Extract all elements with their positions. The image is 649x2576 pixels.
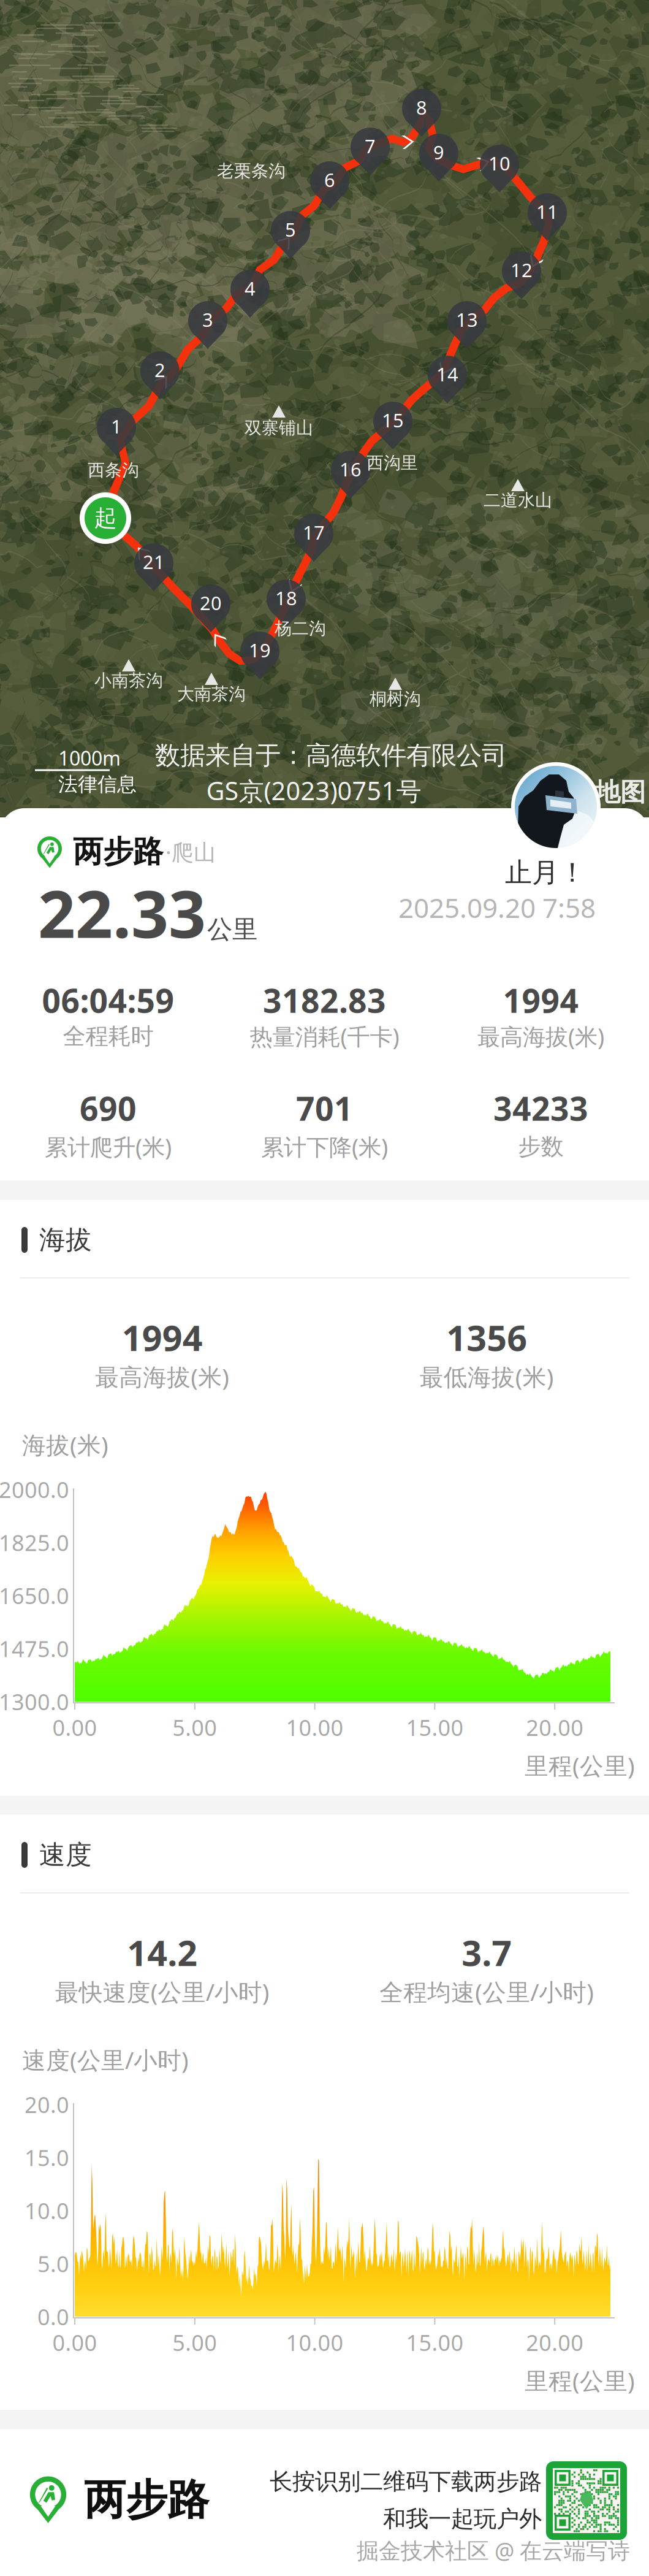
staticText: 两步路 [84, 2474, 209, 2526]
staticText: 06:04:59 [42, 978, 174, 1022]
staticText: 里程(公里) [525, 2365, 635, 2396]
staticText: 海拔 [39, 1224, 92, 1256]
staticText: 地图 [595, 777, 645, 808]
staticText: 21 [143, 549, 165, 574]
staticText: 里程(公里) [525, 1750, 635, 1781]
staticText: 5.00 [172, 1713, 217, 1742]
staticText: 0.00 [52, 1713, 97, 1742]
staticText: 1825.0 [0, 1528, 69, 1557]
staticText: 海拔(米) [22, 1429, 108, 1460]
staticText: 13 [456, 307, 478, 332]
staticText: 16 [340, 457, 362, 482]
staticText: 6 [324, 167, 335, 192]
staticText: 34233 [493, 1086, 588, 1130]
staticText: 2025.09.20 7:58 [398, 890, 596, 925]
staticText: 掘金技术社区 @ 在云端写诗 [357, 2536, 630, 2565]
staticText: 1994 [503, 978, 579, 1022]
staticText: 9 [433, 140, 444, 165]
staticText: 12 [510, 257, 533, 282]
staticText: GS京(2023)0751号 [206, 773, 421, 807]
staticText: 2 [154, 357, 165, 382]
staticText: 最高海拔(米) [95, 1361, 229, 1392]
staticText: 0.0 [37, 2302, 69, 2331]
staticText: 15.00 [406, 1713, 464, 1742]
staticText: 热量消耗(千卡) [250, 1021, 399, 1051]
staticText: 速度 [39, 1839, 92, 1871]
staticText: 7 [365, 133, 376, 158]
staticText: 19 [249, 637, 271, 662]
staticText: 22.33 [38, 869, 206, 956]
staticText: 最快速度(公里/小时) [55, 1976, 270, 2007]
staticText: 5.00 [172, 2328, 217, 2357]
button[interactable]: 两步路 [34, 835, 303, 869]
staticText: 20.00 [526, 1713, 584, 1742]
staticText: 5 [285, 217, 296, 242]
staticText: 3 [202, 307, 213, 332]
staticText: 小南茶沟 [94, 670, 163, 691]
staticText: 1475.0 [0, 1634, 69, 1663]
staticText: 两步路 [73, 833, 163, 870]
staticText: 西条沟 [88, 460, 139, 481]
staticText: 10.00 [286, 1713, 344, 1742]
staticText: 17 [303, 520, 325, 545]
staticText: 长按识别二维码下载两步路 [270, 2468, 542, 2496]
staticText: 1300.0 [0, 1687, 69, 1716]
staticText: 1 [111, 414, 122, 439]
staticText: 1356 [446, 1314, 527, 1361]
staticText: 西沟里 [366, 452, 418, 474]
staticText: 双寨铺山 [245, 417, 313, 439]
staticText: 1000m [58, 745, 121, 771]
button[interactable]: 两步路 [25, 2474, 227, 2526]
staticText: 701 [296, 1086, 353, 1130]
staticText: 止月！ [505, 856, 586, 889]
staticText: 20.00 [526, 2328, 584, 2357]
staticText: 全程耗时 [63, 1022, 154, 1050]
staticText: 最高海拔(米) [477, 1021, 604, 1051]
staticText: 3182.83 [263, 978, 386, 1022]
staticText: 大南茶沟 [177, 684, 246, 705]
staticText: 15.00 [406, 2328, 464, 2357]
staticText: 法律信息 [58, 772, 137, 796]
staticText: 和我一起玩户外 [383, 2505, 542, 2533]
staticText: 8 [416, 95, 427, 120]
staticText: 起 [94, 504, 117, 532]
staticText: 0.00 [52, 2328, 97, 2357]
staticText: 11 [536, 199, 558, 224]
staticText: 20 [200, 590, 222, 615]
staticText: 老栗条沟 [217, 161, 286, 182]
staticText: 10.0 [25, 2196, 69, 2225]
staticText: 步数 [518, 1133, 564, 1161]
staticText: 桐树沟 [370, 688, 421, 710]
staticText: 速度(公里/小时) [22, 2044, 189, 2075]
staticText: 10 [488, 151, 510, 176]
staticText: 1994 [122, 1314, 203, 1361]
staticText: 最低海拔(米) [420, 1361, 554, 1392]
staticText: ·爬山 [165, 837, 216, 866]
staticText: 14.2 [127, 1929, 198, 1976]
staticText: 15 [382, 408, 404, 432]
staticText: 4 [245, 276, 256, 301]
staticText: 数据来自于：高德软件有限公司 [155, 740, 507, 771]
staticText: 全程均速(公里/小时) [380, 1976, 594, 2007]
staticText: 10.00 [286, 2328, 344, 2357]
staticText: 14 [436, 362, 458, 386]
staticText: 20.0 [25, 2090, 69, 2119]
staticText: 公里 [207, 914, 257, 945]
staticText: 18 [275, 585, 297, 610]
staticText: 3.7 [462, 1929, 512, 1976]
staticText: 2000.0 [0, 1475, 69, 1504]
staticText: 5.0 [37, 2249, 69, 2278]
staticText: 累计爬升(米) [45, 1131, 172, 1162]
staticText: 累计下降(米) [261, 1131, 388, 1162]
staticText: 杨二沟 [275, 618, 326, 639]
staticText: 690 [80, 1086, 137, 1130]
staticText: 15.0 [25, 2143, 69, 2172]
staticText: 二道水山 [484, 490, 552, 511]
staticText: 1650.0 [0, 1581, 69, 1610]
